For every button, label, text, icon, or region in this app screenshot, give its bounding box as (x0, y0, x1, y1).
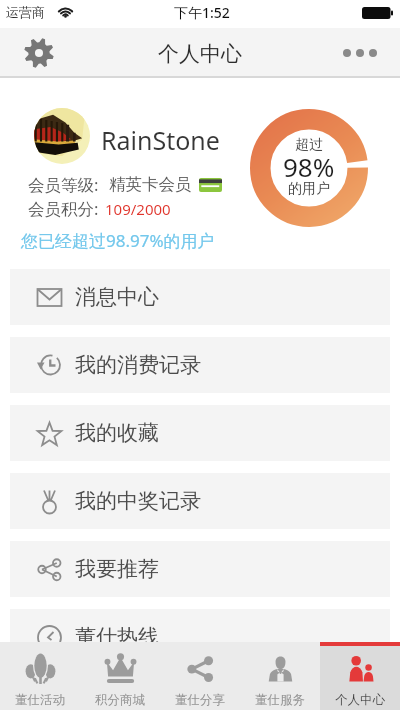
staticText: 精英卡会员 (109, 174, 192, 195)
button[interactable]: 董仕活动 (0, 642, 80, 710)
staticText: 超过 (295, 136, 323, 154)
button[interactable]: 设置 (17, 31, 61, 75)
staticText: 98% (283, 149, 335, 184)
staticText: 董仕热线 (75, 624, 159, 650)
button[interactable]: 我的消费记录 (10, 337, 390, 393)
button[interactable]: 个人中心 (320, 642, 400, 710)
staticText: 我的中奖记录 (75, 488, 201, 514)
button[interactable]: 董仕热线 (10, 609, 390, 665)
button[interactable]: 我的中奖记录 (10, 473, 390, 529)
staticText: 下午1:52 (174, 3, 230, 22)
staticText: RainStone (101, 123, 220, 157)
staticText: 您已经超过98.97%的用户 (21, 229, 215, 252)
button[interactable]: 更多选项 (338, 31, 382, 75)
button[interactable]: 我的收藏 (10, 405, 390, 461)
button[interactable]: 我要推荐 (10, 541, 390, 597)
button[interactable]: 董仕分享 (160, 642, 240, 710)
staticText: 会员等级: (28, 173, 99, 196)
staticText: 个人中心 (158, 41, 242, 67)
staticText: 109/2000 (105, 199, 171, 219)
staticText: 积分商城 (95, 692, 145, 708)
button[interactable]: 董仕服务 (240, 642, 320, 710)
staticText: 消息中心 (75, 284, 159, 310)
staticText: 董仕活动 (15, 692, 65, 708)
staticText: 运营商 (6, 4, 45, 20)
staticText: 个人中心 (335, 692, 385, 708)
staticText: 董仕服务 (255, 692, 305, 708)
staticText: 我要推荐 (75, 556, 159, 582)
button[interactable]: 消息中心 (10, 269, 390, 325)
staticText: 会员积分: (28, 197, 99, 220)
staticText: 我的消费记录 (75, 352, 201, 378)
staticText: 的用户 (288, 180, 330, 198)
staticText: 我的收藏 (75, 420, 159, 446)
staticText: 董仕分享 (175, 692, 225, 708)
button[interactable]: 积分商城 (80, 642, 160, 710)
